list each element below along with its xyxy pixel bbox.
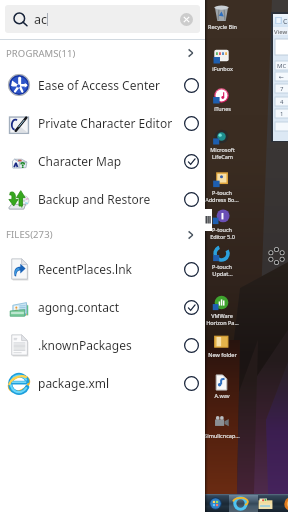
staticText: Ease of Access Center	[38, 77, 206, 93]
staticText: Horizon Pa...	[206, 319, 239, 326]
staticText: Character Map	[38, 153, 206, 169]
staticText: VMWare	[211, 312, 233, 319]
button[interactable]: Select	[184, 338, 199, 353]
staticText: iFunbox	[212, 65, 233, 72]
staticText: package.xml	[38, 375, 206, 391]
staticText: View	[274, 28, 288, 36]
staticText: Ca	[283, 17, 288, 27]
button[interactable]: ac	[5, 5, 200, 33]
button[interactable]: App	[284, 497, 288, 511]
staticText: Recycle Bin	[208, 23, 237, 30]
button[interactable]: Ease of Access Center	[0, 66, 205, 104]
staticText: ←	[279, 73, 285, 80]
staticText: P-touch	[212, 226, 232, 233]
button[interactable]: Selected	[184, 154, 199, 169]
staticText: ac	[34, 11, 48, 28]
staticText: RecentPlaces.lnk	[38, 261, 206, 277]
button[interactable]: Start	[209, 497, 222, 510]
staticText: 4	[280, 98, 284, 106]
staticText: P-touch	[212, 263, 232, 270]
button[interactable]: Backup and Restore	[0, 180, 205, 218]
staticText: Backup and Restore	[38, 191, 206, 207]
staticText: 1	[280, 110, 284, 118]
button[interactable]: Select	[184, 192, 199, 207]
button[interactable]: Private Character Editor	[0, 104, 205, 142]
staticText: agong.contact	[38, 299, 206, 315]
staticText: FILES(273)	[6, 228, 53, 241]
staticText: MC	[277, 62, 287, 70]
button[interactable]: Select	[184, 78, 199, 93]
button[interactable]: Select	[184, 262, 199, 277]
button[interactable]: FILES(273)	[0, 218, 205, 251]
staticText: P-touch	[212, 189, 232, 196]
staticText: Microsoft	[210, 146, 235, 153]
button[interactable]: PROGRAMS(11)	[0, 40, 205, 66]
staticText: Editor 5.0	[210, 233, 235, 240]
button[interactable]: Clear	[180, 13, 193, 26]
staticText: Simulicncap...	[204, 432, 240, 439]
staticText: New folder	[208, 351, 237, 358]
button[interactable]: Resize panel	[203, 209, 213, 231]
staticText: LifeCam	[212, 153, 233, 160]
button[interactable]: agong.contact	[0, 288, 205, 326]
button[interactable]: File Explorer	[258, 497, 273, 512]
staticText: Updat...	[212, 270, 233, 277]
button[interactable]: Select	[184, 116, 199, 131]
button[interactable]: RecentPlaces.lnk	[0, 250, 205, 288]
staticText: .knownPackages	[38, 337, 206, 353]
staticText: 7	[280, 85, 284, 93]
staticText: A.wav	[214, 392, 230, 399]
button[interactable]: Selected	[184, 300, 199, 315]
staticText: PROGRAMS(11)	[6, 47, 76, 60]
staticText: iTunes	[214, 105, 231, 112]
button[interactable]: .knownPackages	[0, 326, 205, 364]
button[interactable]: package.xml	[0, 364, 205, 402]
button[interactable]: Character Map	[0, 142, 205, 180]
staticText: Address Bo...	[205, 196, 239, 203]
button[interactable]: Select	[184, 376, 199, 391]
staticText: Private Character Editor	[38, 115, 206, 131]
button[interactable]: Internet Explorer	[233, 496, 248, 511]
